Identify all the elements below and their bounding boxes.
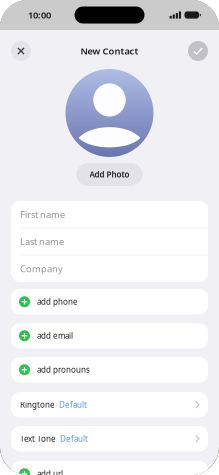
button[interactable]: add email — [11, 323, 208, 348]
staticText: Text Tone — [20, 433, 56, 444]
staticText: 10:00 — [28, 9, 51, 21]
staticText: Add Photo — [89, 169, 129, 180]
button[interactable]: Ringtone — [11, 392, 208, 417]
staticText: add url — [37, 468, 63, 475]
button[interactable]: add pronouns — [11, 357, 208, 382]
staticText: Default — [59, 399, 87, 410]
staticText: Ringtone — [20, 399, 55, 410]
staticText: First name — [20, 208, 65, 221]
staticText: New Contact — [80, 45, 138, 57]
staticText: add email — [37, 330, 73, 341]
staticText: add pronouns — [37, 364, 90, 375]
button[interactable]: Text Tone — [11, 426, 208, 451]
staticText: Last name — [20, 235, 64, 248]
button[interactable]: Add Photo — [76, 163, 142, 186]
staticText: Default — [60, 433, 88, 444]
button[interactable]: add phone — [11, 289, 208, 314]
staticText: add phone — [37, 296, 78, 307]
button[interactable]: Cancel — [11, 41, 31, 61]
button[interactable]: add url — [11, 461, 208, 475]
button[interactable]: Done — [188, 41, 208, 61]
staticText: Company — [20, 262, 63, 275]
